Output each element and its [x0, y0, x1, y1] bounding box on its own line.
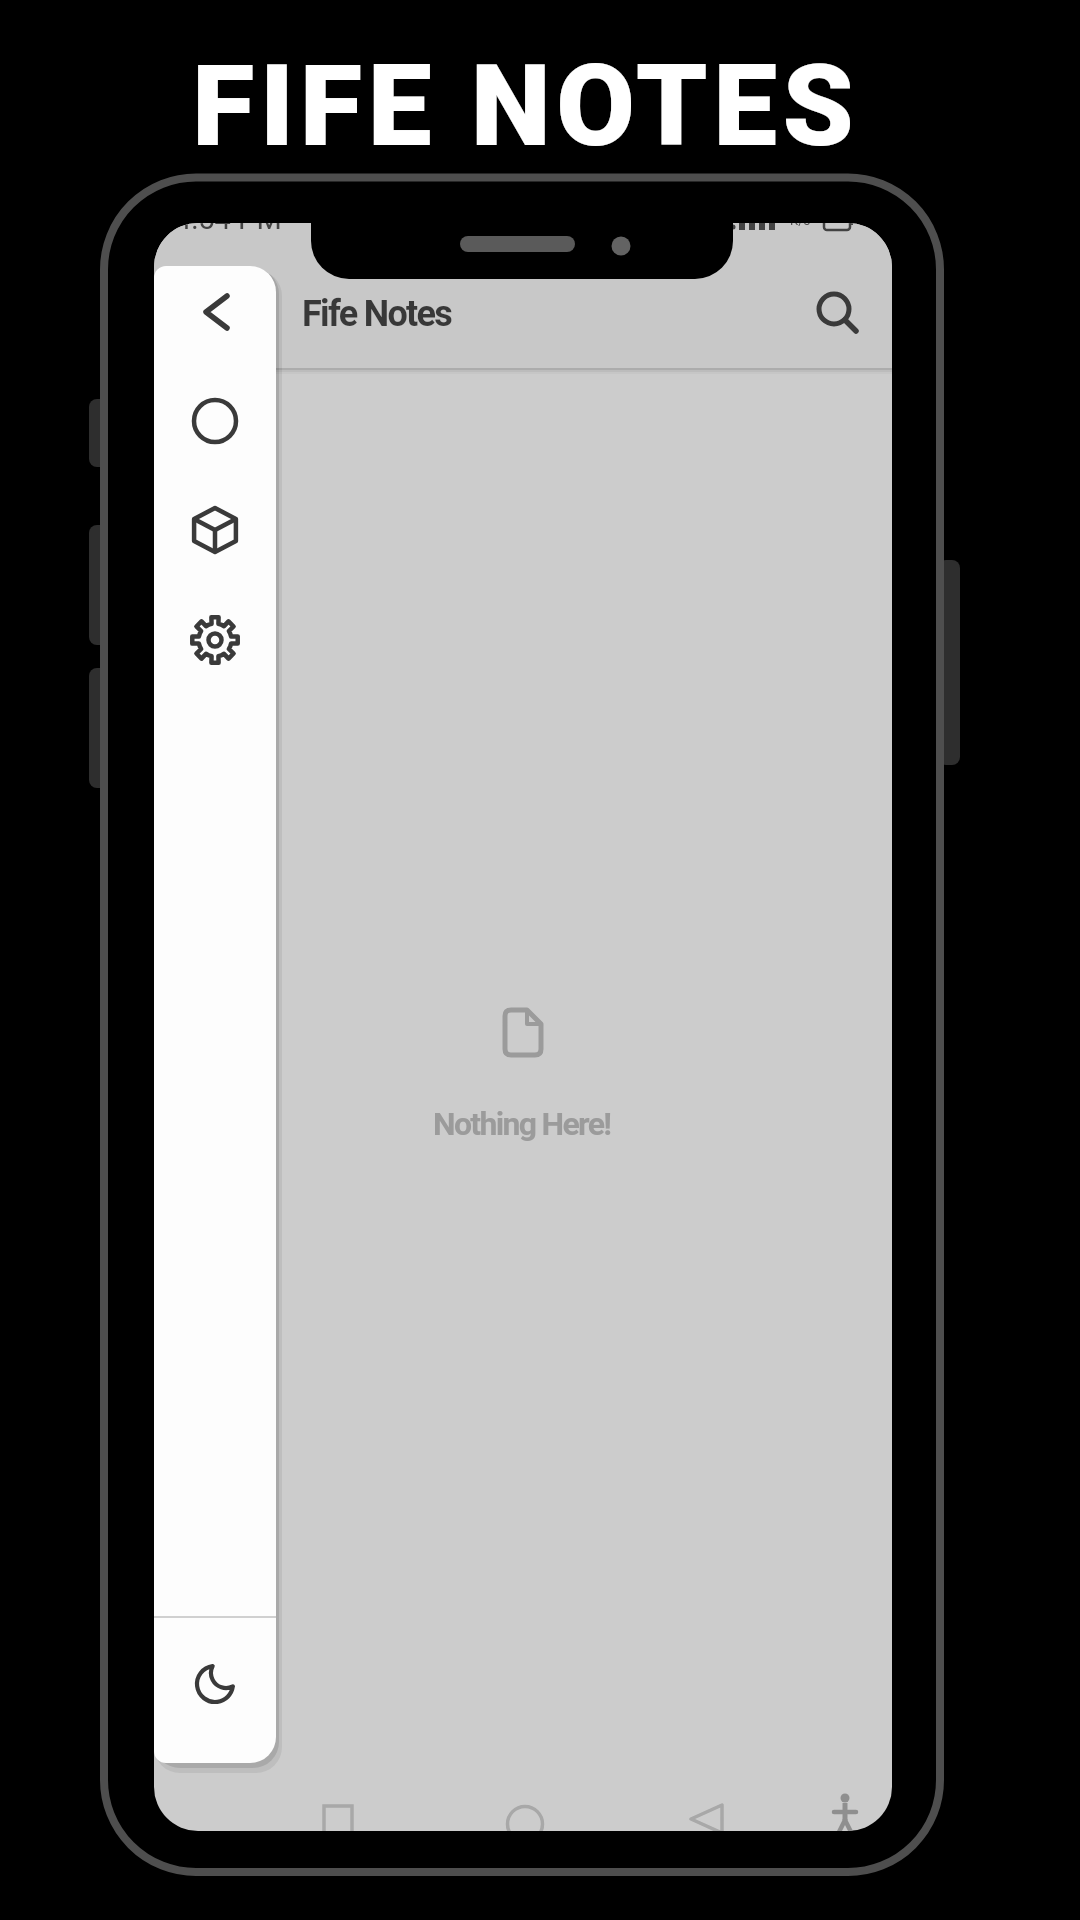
button[interactable] — [189, 1658, 241, 1710]
button[interactable] — [190, 286, 242, 338]
button[interactable] — [189, 614, 241, 666]
button[interactable] — [804, 280, 856, 332]
button[interactable] — [497, 1788, 552, 1831]
button[interactable] — [676, 1788, 731, 1831]
button[interactable] — [310, 1788, 365, 1831]
button[interactable] — [819, 1788, 874, 1831]
button[interactable] — [189, 395, 241, 447]
button[interactable] — [189, 504, 241, 556]
